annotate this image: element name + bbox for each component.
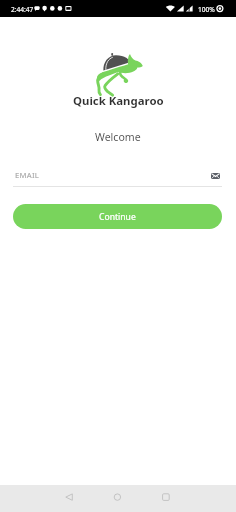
staticText: Quick Kangaroo — [73, 93, 164, 109]
staticText: Welcome — [95, 130, 141, 144]
staticText: EMAIL — [15, 170, 40, 180]
button[interactable]: Continue — [13, 204, 222, 229]
button[interactable]: Email — [211, 171, 220, 180]
staticText: 100% — [198, 5, 215, 14]
staticText: Continue — [99, 211, 136, 223]
staticText: 2:44:47 — [11, 5, 34, 14]
button[interactable]: Home — [93, 485, 141, 512]
button[interactable]: Recent apps — [141, 485, 189, 512]
